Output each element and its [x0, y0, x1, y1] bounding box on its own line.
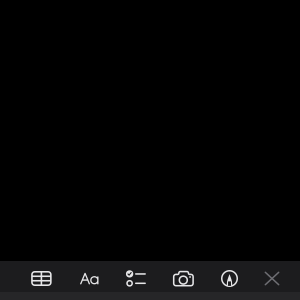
button[interactable]: Insert table: [23, 263, 59, 294]
button[interactable]: Aa text formatting: [71, 263, 107, 294]
button[interactable]: Insert photo: [165, 263, 201, 294]
button[interactable]: Close keyboard: [254, 263, 290, 294]
button[interactable]: Markup: [211, 263, 247, 294]
button[interactable]: Checklist: [118, 263, 154, 294]
